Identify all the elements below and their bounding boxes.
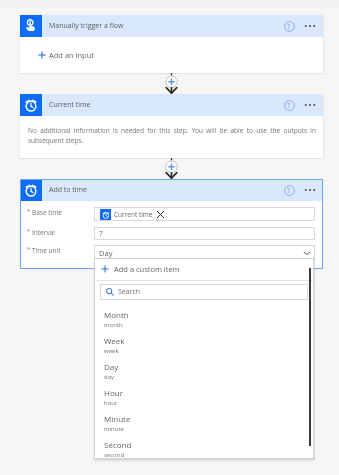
staticText: second — [104, 451, 125, 459]
staticText: 7 — [99, 229, 103, 238]
staticText: Base time — [32, 208, 62, 217]
staticText: No additional information is needed for … — [28, 126, 316, 145]
button[interactable]: Add an input — [20, 37, 323, 73]
button[interactable]: Second — [94, 438, 314, 459]
staticText: hour — [104, 399, 118, 407]
button[interactable]: Help — [281, 182, 297, 198]
staticText: * — [27, 227, 31, 235]
staticText: * — [27, 207, 31, 215]
staticText: * — [27, 245, 31, 253]
button[interactable]: Day — [94, 360, 314, 386]
button[interactable]: Manually trigger a flow — [20, 15, 323, 37]
staticText: Second — [104, 439, 132, 450]
button[interactable]: Hour — [94, 386, 314, 412]
staticText: Week — [104, 335, 125, 346]
staticText: Add a custom item — [114, 264, 180, 274]
button[interactable]: Month — [94, 308, 314, 334]
button[interactable]: Add a custom item — [94, 258, 314, 280]
staticText: Add an input — [49, 50, 94, 60]
button[interactable]: Minute — [94, 412, 314, 438]
button[interactable]: Week — [94, 334, 314, 360]
staticText: month — [104, 321, 123, 329]
button[interactable]: More options — [302, 18, 318, 34]
button[interactable]: Current time — [94, 207, 315, 221]
staticText: Minute — [104, 413, 131, 424]
button[interactable]: Help — [281, 97, 297, 113]
staticText: Add to time — [49, 185, 88, 195]
button[interactable]: Day — [94, 245, 315, 261]
staticText: minute — [104, 425, 124, 433]
staticText: Time unit — [32, 246, 61, 255]
button[interactable]: More options — [302, 182, 318, 198]
staticText: ? — [287, 185, 291, 195]
staticText: Month — [104, 309, 129, 320]
staticText: Day — [104, 361, 119, 372]
button[interactable]: 7 — [94, 227, 315, 240]
staticText: ? — [287, 21, 291, 31]
staticText: week — [104, 347, 119, 355]
staticText: Search — [118, 287, 141, 297]
staticText: ? — [287, 100, 291, 110]
staticText: Manually trigger a flow — [49, 21, 124, 31]
staticText: Current time — [49, 100, 91, 110]
button[interactable]: Search — [100, 284, 308, 300]
staticText: Hour — [104, 387, 123, 398]
staticText: day — [104, 373, 115, 381]
staticText: Current time — [114, 210, 153, 219]
staticText: Interval — [32, 228, 55, 237]
button[interactable]: Help — [281, 18, 297, 34]
button[interactable]: Current time — [20, 94, 323, 116]
button[interactable]: More options — [302, 97, 318, 113]
button[interactable]: Add to time — [20, 179, 323, 201]
staticText: Day — [99, 248, 113, 258]
